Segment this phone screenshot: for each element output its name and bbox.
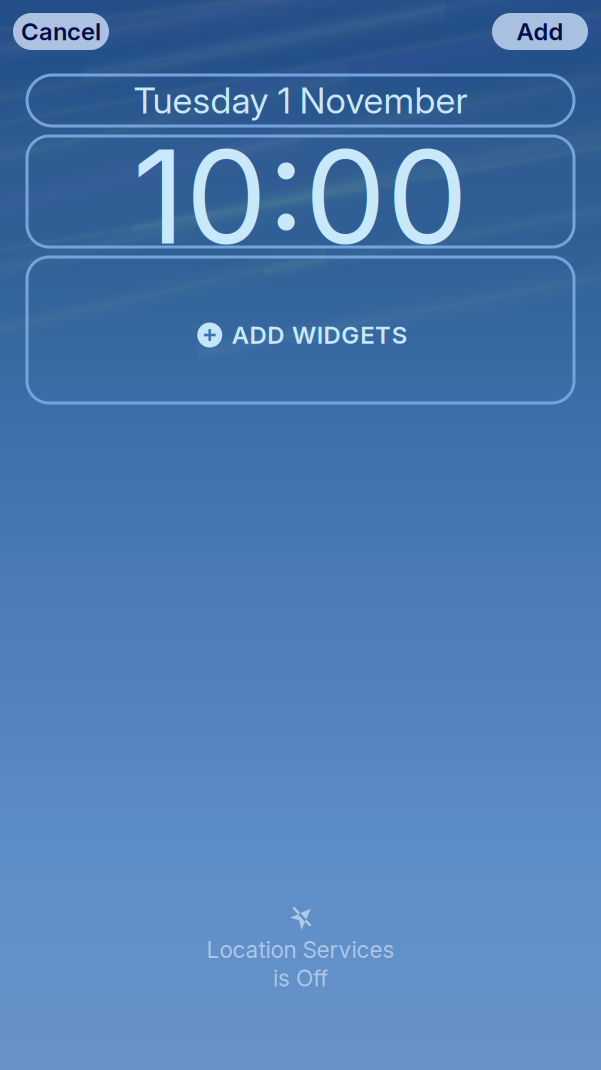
- staticText: Cancel: [21, 17, 101, 46]
- button[interactable]: Tuesday 1 November: [27, 75, 574, 126]
- button[interactable]: Cancel: [13, 13, 109, 50]
- staticText: is Off: [273, 965, 328, 992]
- staticText: Location Services: [206, 936, 394, 963]
- staticText: ADD WIDGETS: [232, 320, 408, 349]
- staticText: 10:00: [132, 118, 468, 275]
- button[interactable]: 10:00: [27, 136, 574, 247]
- button[interactable]: Add: [492, 13, 588, 50]
- button[interactable]: ADD WIDGETS: [27, 257, 574, 403]
- staticText: Add: [516, 17, 563, 46]
- staticText: Tuesday 1 November: [133, 79, 467, 122]
